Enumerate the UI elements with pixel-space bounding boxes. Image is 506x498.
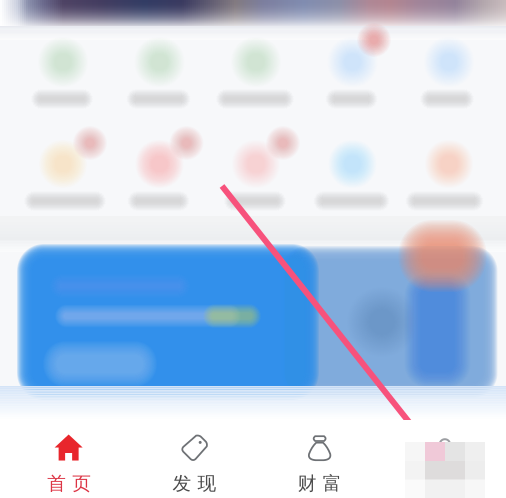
button[interactable]: 财 富 [257, 420, 382, 498]
button[interactable]: 发 现 [132, 420, 257, 498]
button[interactable]: 店铺 [382, 420, 506, 498]
staticText: 首 页 [47, 472, 91, 495]
staticText: 财 富 [298, 472, 342, 495]
staticText: 发 现 [172, 472, 216, 495]
button[interactable]: 首 页 [6, 420, 132, 498]
